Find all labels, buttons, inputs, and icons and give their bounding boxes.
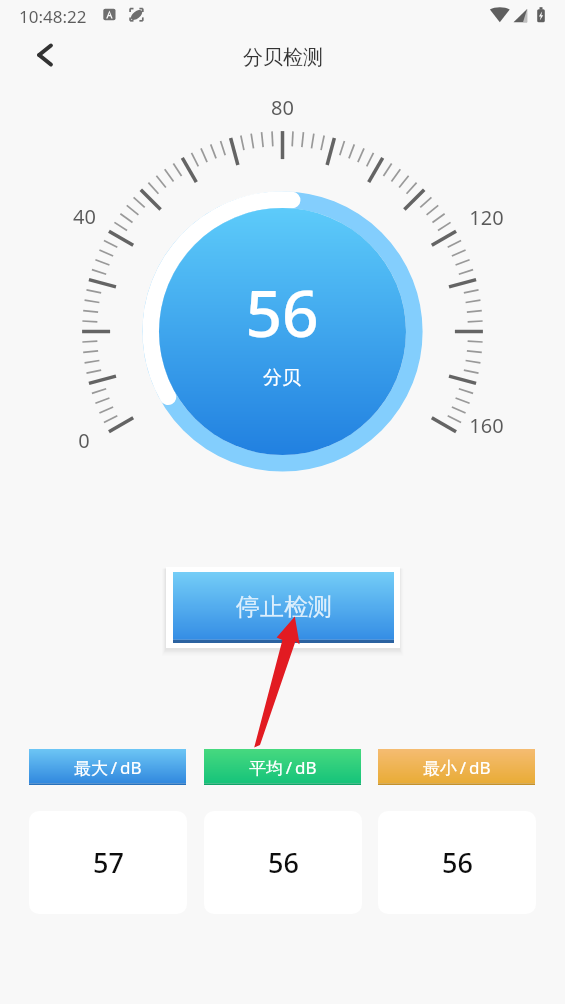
button[interactable]: 最大 / dB xyxy=(29,749,186,785)
staticText: 80 xyxy=(271,94,294,121)
staticText: 分贝检测 xyxy=(243,45,323,70)
button[interactable]: 平均 / dB xyxy=(204,749,361,785)
staticText: 平均 / dB xyxy=(249,756,317,779)
staticText: 160 xyxy=(469,412,504,439)
staticText: 最大 / dB xyxy=(74,756,142,779)
staticText: 120 xyxy=(469,204,504,231)
staticText: 56 xyxy=(245,269,319,349)
staticText: 最小 / dB xyxy=(423,756,491,779)
button[interactable]: 最小 / dB xyxy=(378,749,535,785)
staticText: 56 xyxy=(442,844,473,881)
button[interactable]: 56 xyxy=(204,811,362,914)
button[interactable]: 57 xyxy=(29,811,187,914)
staticText: 57 xyxy=(93,844,124,881)
staticText: 0 xyxy=(78,427,90,454)
staticText: 分贝 xyxy=(263,366,301,390)
staticText: 10:48:22 xyxy=(19,5,87,28)
button[interactable]: Back xyxy=(26,36,64,74)
staticText: 56 xyxy=(268,844,299,881)
staticText: 40 xyxy=(73,203,96,230)
button[interactable]: 56 xyxy=(378,811,536,914)
staticText: 停止检测 xyxy=(236,592,332,622)
button[interactable]: 停止检测 xyxy=(166,567,400,648)
